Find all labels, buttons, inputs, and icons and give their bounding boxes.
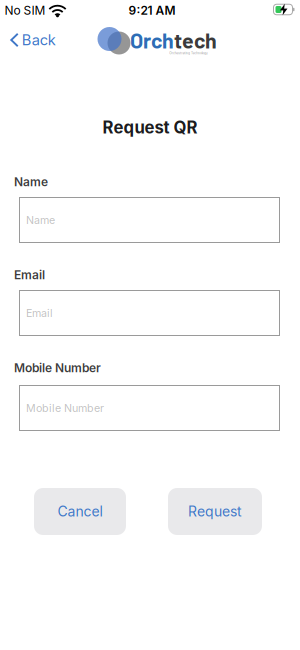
- staticText: Name: [14, 175, 48, 189]
- button[interactable]: Back: [11, 31, 56, 49]
- button[interactable]: Cancel: [34, 488, 126, 535]
- button[interactable]: Mobile Number text field: [19, 385, 280, 431]
- staticText: Orchestrating Technology: [156, 50, 220, 56]
- button[interactable]: Email text field: [19, 290, 280, 336]
- staticText: tech: [174, 27, 217, 53]
- staticText: Orch: [130, 27, 174, 53]
- staticText: 9:21 AM: [128, 3, 175, 18]
- staticText: Email: [14, 268, 45, 282]
- staticText: Mobile Number: [26, 401, 104, 414]
- staticText: Back: [22, 31, 56, 49]
- staticText: No SIM: [4, 3, 45, 18]
- staticText: Request QR: [102, 117, 197, 138]
- button[interactable]: Name text field: [19, 197, 280, 243]
- button[interactable]: Request: [168, 488, 262, 535]
- staticText: Cancel: [57, 503, 102, 520]
- staticText: Request: [188, 503, 242, 520]
- staticText: Name: [26, 213, 55, 226]
- staticText: Email: [26, 306, 53, 319]
- staticText: Mobile Number: [14, 361, 101, 375]
